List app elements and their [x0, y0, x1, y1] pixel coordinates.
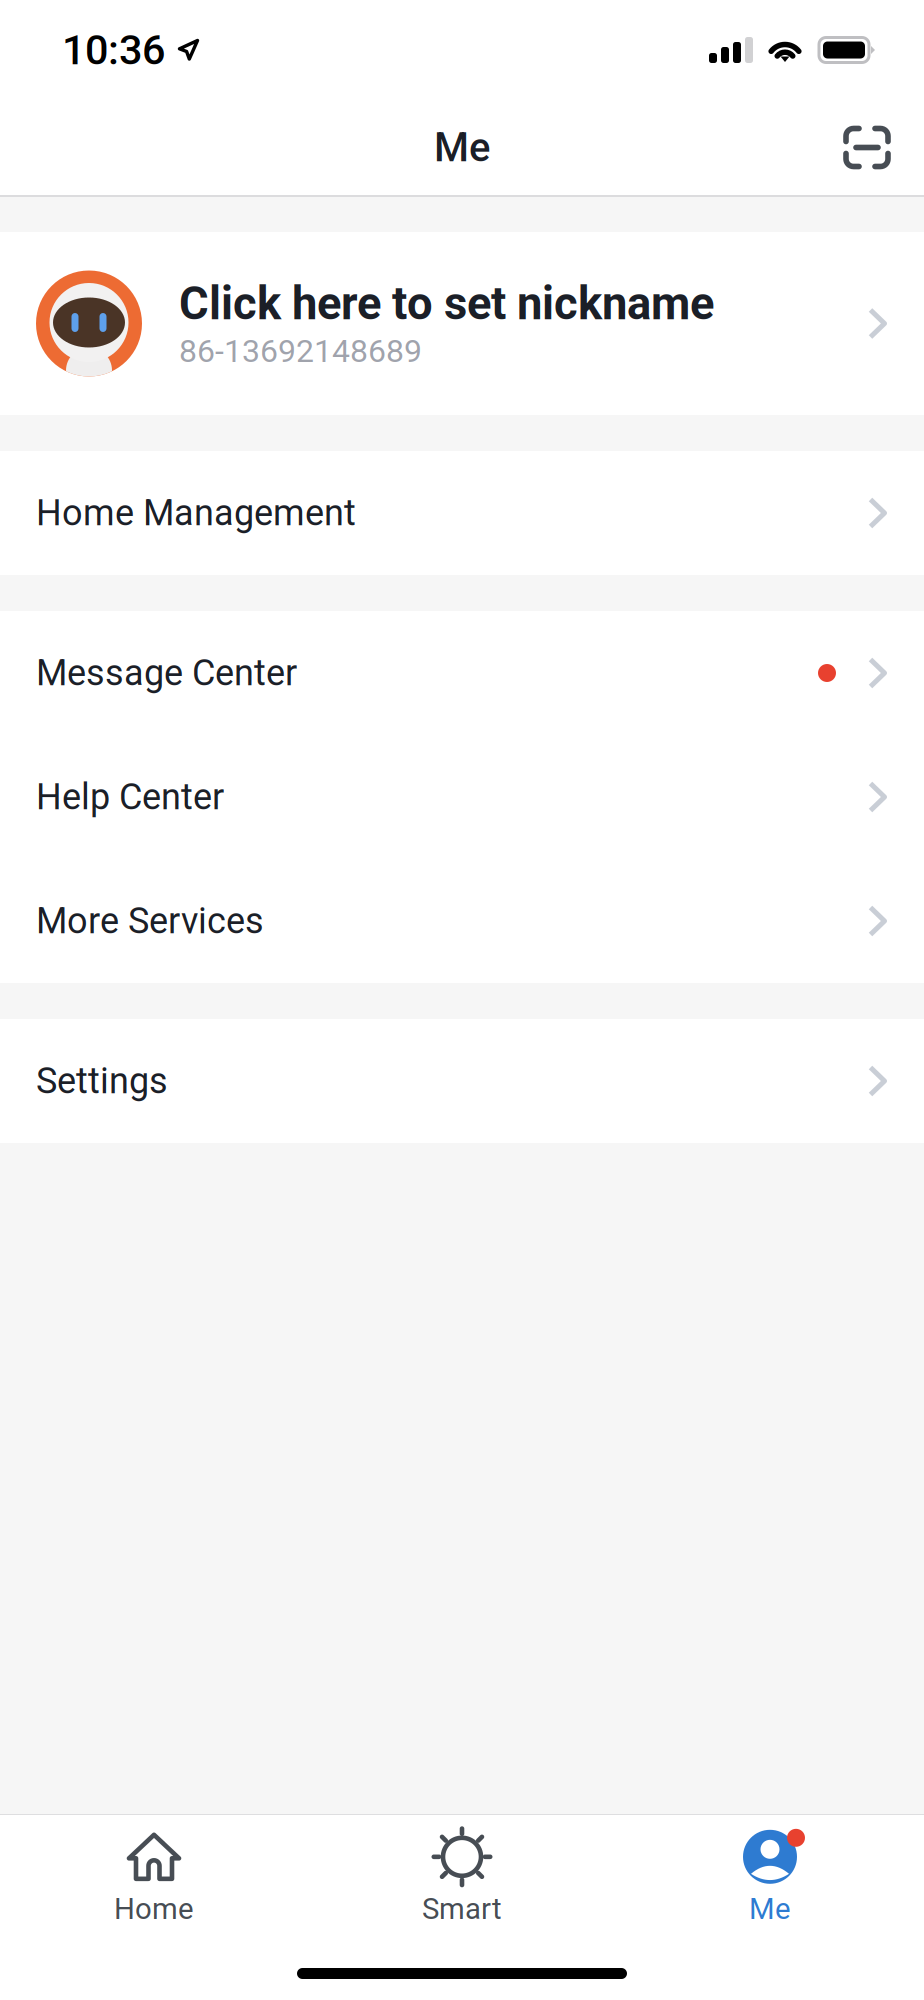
button[interactable]: Home Management	[0, 451, 924, 575]
button[interactable]: Message Center	[0, 611, 924, 735]
staticText: 86-13692148689	[179, 332, 422, 370]
button[interactable]: Scan	[820, 97, 924, 187]
staticText: Smart	[422, 1892, 502, 1926]
button[interactable]: Click here to set nickname	[0, 232, 924, 415]
staticText: Home	[114, 1892, 194, 1926]
staticText: Click here to set nickname	[179, 277, 714, 330]
staticText: Me	[749, 1892, 791, 1926]
staticText: Help Center	[36, 776, 224, 818]
staticText: Settings	[36, 1060, 168, 1102]
staticText: More Services	[36, 900, 264, 942]
staticText: 10:36	[62, 26, 165, 74]
button[interactable]: Home	[0, 1815, 308, 1925]
staticText: Home Management	[36, 492, 356, 534]
button[interactable]: Help Center	[0, 735, 924, 859]
staticText: Message Center	[36, 652, 297, 694]
button[interactable]: Smart	[308, 1815, 616, 1925]
button[interactable]: Settings	[0, 1019, 924, 1143]
button[interactable]: More Services	[0, 859, 924, 983]
button[interactable]: Me	[616, 1815, 924, 1925]
staticText: Me	[434, 124, 490, 171]
